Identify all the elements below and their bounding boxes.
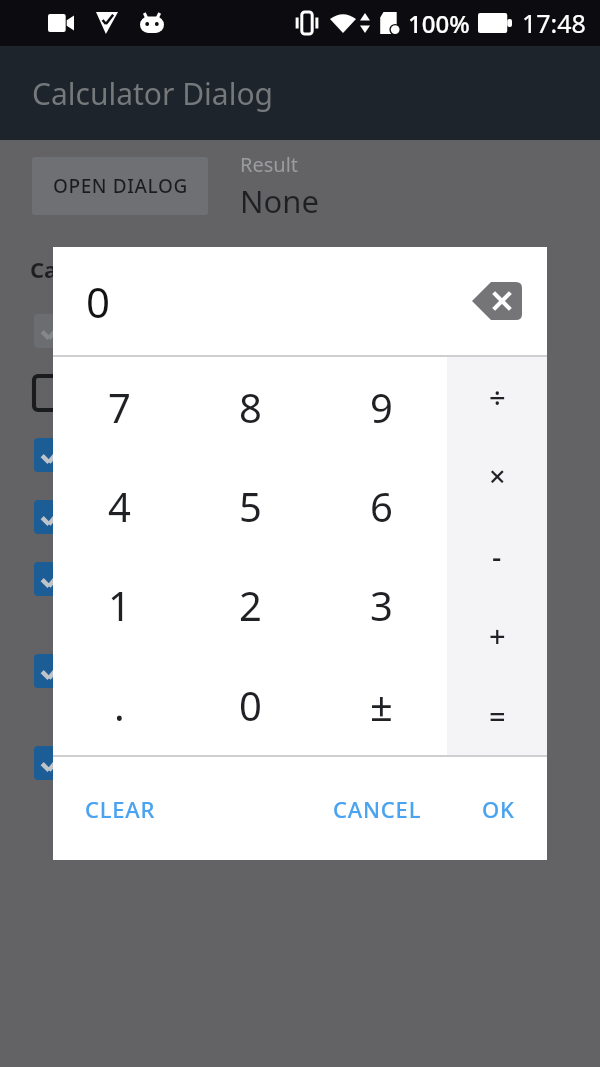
button[interactable]: OPEN DIALOG <box>32 157 208 215</box>
staticText: - <box>492 536 502 575</box>
button[interactable]: 5 <box>185 456 316 555</box>
button[interactable] <box>0 486 600 548</box>
button[interactable]: 7 <box>53 357 185 456</box>
button[interactable]: 1 <box>53 555 185 655</box>
staticText: OK <box>482 794 515 824</box>
button[interactable] <box>0 732 600 794</box>
button[interactable]: 2 <box>185 555 316 655</box>
button[interactable] <box>0 300 600 362</box>
staticText: + <box>489 616 506 655</box>
staticText: 5 <box>239 479 262 533</box>
button[interactable]: ÷ <box>447 357 547 436</box>
staticText: . <box>114 678 125 732</box>
staticText: 17:48 <box>522 6 586 40</box>
staticText: 4 <box>108 479 131 533</box>
staticText: OPEN DIALOG <box>53 173 188 199</box>
button[interactable]: × <box>447 436 547 515</box>
button[interactable]: - <box>447 515 547 595</box>
staticText: CANCEL <box>333 794 422 824</box>
button[interactable] <box>0 548 600 610</box>
button[interactable]: = <box>447 675 547 755</box>
button[interactable] <box>0 424 600 486</box>
button[interactable] <box>0 362 600 424</box>
staticText: × <box>489 456 506 495</box>
staticText: CLEAR <box>85 794 156 824</box>
button[interactable]: Backspace <box>469 279 525 323</box>
staticText: 6 <box>370 479 393 533</box>
button[interactable]: ± <box>316 655 447 755</box>
button[interactable]: . <box>53 655 185 755</box>
button[interactable]: 3 <box>316 555 447 655</box>
staticText: 9 <box>370 380 393 434</box>
staticText: None <box>240 180 319 222</box>
staticText: 8 <box>239 380 262 434</box>
staticText: 7 <box>108 380 131 434</box>
button[interactable]: + <box>447 595 547 675</box>
button[interactable]: CLEAR <box>69 784 172 834</box>
staticText: = <box>489 696 506 735</box>
button[interactable]: 9 <box>316 357 447 456</box>
button[interactable]: 6 <box>316 456 447 555</box>
button[interactable] <box>0 640 600 702</box>
staticText: 100% <box>408 7 470 40</box>
staticText: 1 <box>108 578 131 632</box>
staticText: ± <box>370 678 393 732</box>
staticText: Calculator <box>30 254 143 284</box>
button[interactable]: 8 <box>185 357 316 456</box>
button[interactable]: CANCEL <box>317 784 438 834</box>
button[interactable]: 0 <box>185 655 316 755</box>
staticText: Result <box>240 151 299 178</box>
staticText: 0 <box>86 273 111 330</box>
staticText: 0 <box>239 678 262 732</box>
staticText: 2 <box>239 578 262 632</box>
staticText: ÷ <box>489 377 506 416</box>
button[interactable]: OK <box>466 784 531 834</box>
staticText: 3 <box>370 578 393 632</box>
staticText: Calculator Dialog <box>32 73 274 114</box>
button[interactable]: 4 <box>53 456 185 555</box>
